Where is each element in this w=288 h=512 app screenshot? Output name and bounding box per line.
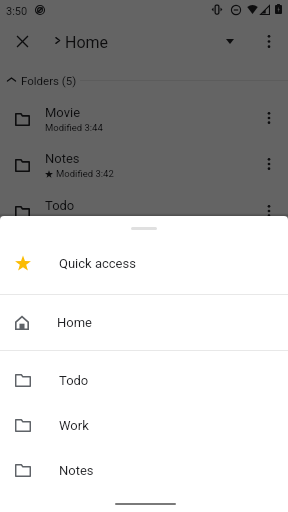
staticText: 3:50	[6, 5, 28, 18]
staticText: Movie	[45, 105, 81, 120]
staticText: Quick access	[59, 256, 136, 271]
staticText: Todo	[59, 373, 89, 388]
button[interactable]: Todo	[0, 189, 288, 235]
button[interactable]: Item options	[265, 158, 273, 170]
button[interactable]: Item options	[265, 205, 273, 217]
staticText: Modified 3:44	[45, 122, 103, 133]
button[interactable]: Home	[0, 295, 288, 350]
staticText: Home	[57, 315, 92, 330]
staticText: Todo	[45, 198, 75, 213]
staticText: Work	[59, 418, 89, 433]
staticText: Modified 3:40	[45, 215, 103, 226]
staticText: Home	[65, 33, 109, 52]
button[interactable]: Quick access	[0, 232, 288, 294]
button[interactable]: Work	[0, 403, 288, 448]
staticText: Notes	[59, 463, 94, 478]
button[interactable]: Movie	[0, 96, 288, 142]
button[interactable]: Close	[17, 36, 28, 47]
staticText: Folders (5)	[21, 74, 77, 87]
staticText: Modified 3:42	[56, 168, 114, 179]
button[interactable]: Notes	[0, 142, 288, 188]
button[interactable]: More options	[265, 35, 273, 48]
button[interactable]: Item options	[265, 112, 273, 124]
staticText: Notes	[45, 151, 80, 166]
button[interactable]: Expand	[226, 39, 234, 44]
button[interactable]: Todo	[0, 358, 288, 403]
button[interactable]: Notes	[0, 448, 288, 493]
